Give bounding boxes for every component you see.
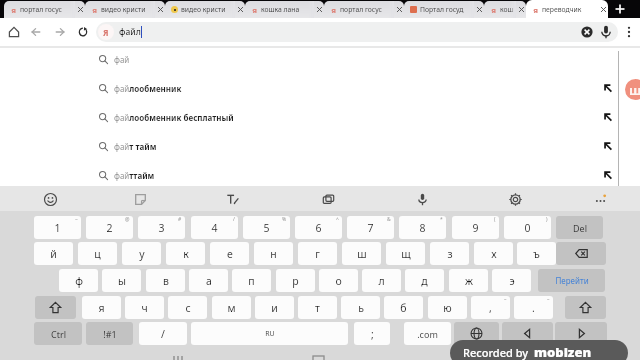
button[interactable]: Я: [324, 1, 404, 18]
button[interactable]: з: [430, 242, 469, 265]
button[interactable]: Voice search: [596, 19, 616, 45]
button[interactable]: л: [362, 269, 401, 292]
button[interactable]: Profile: [625, 79, 640, 100]
button[interactable]: Insert suggestion: [603, 83, 613, 93]
button[interactable]: /: [139, 322, 187, 345]
button[interactable]: Insert suggestion: [603, 141, 613, 151]
staticText: ы: [118, 274, 126, 288]
button[interactable]: ц: [78, 242, 117, 265]
button[interactable]: Я: [4, 1, 85, 18]
button[interactable]: Я: [526, 0, 608, 18]
button[interactable]: т: [298, 296, 337, 319]
button[interactable]: 4: [191, 216, 238, 239]
button[interactable]: фай: [0, 45, 640, 73]
button[interactable]: н: [254, 242, 293, 265]
button[interactable]: ю: [428, 296, 467, 319]
button[interactable]: р: [276, 269, 315, 292]
button[interactable]: Insert suggestion: [603, 170, 613, 180]
button[interactable]: New tab: [611, 0, 629, 18]
button[interactable]: Я: [85, 1, 165, 18]
button[interactable]: .com: [404, 322, 451, 345]
button[interactable]: я: [82, 296, 121, 319]
staticText: щ: [401, 247, 411, 261]
staticText: кошка: [500, 5, 517, 14]
button[interactable]: ,: [471, 296, 510, 319]
button[interactable]: More: [589, 188, 611, 210]
button[interactable]: д: [405, 269, 444, 292]
button[interactable]: ч: [125, 296, 164, 319]
button[interactable]: 7: [347, 216, 394, 239]
staticText: р: [292, 274, 299, 288]
button[interactable]: [556, 242, 606, 265]
button[interactable]: э: [492, 269, 531, 292]
button[interactable]: Я: [245, 1, 324, 18]
staticText: к: [183, 247, 189, 261]
button[interactable]: ф: [59, 269, 98, 292]
staticText: /: [161, 327, 165, 341]
button[interactable]: 5: [243, 216, 290, 239]
button[interactable]: Clear: [577, 19, 597, 45]
button[interactable]: х: [474, 242, 513, 265]
button[interactable]: а: [189, 269, 228, 292]
button[interactable]: в: [146, 269, 185, 292]
button[interactable]: Voice input: [411, 188, 433, 210]
button[interactable]: п: [232, 269, 271, 292]
button[interactable]: у: [122, 242, 161, 265]
button[interactable]: Home: [4, 19, 24, 45]
button[interactable]: ъ: [517, 242, 556, 265]
button[interactable]: Back: [26, 19, 46, 45]
button[interactable]: ь: [341, 296, 380, 319]
button[interactable]: б: [384, 296, 423, 319]
button[interactable]: Del: [556, 216, 603, 239]
button[interactable]: и: [255, 296, 294, 319]
button[interactable]: файлообменник: [0, 74, 640, 102]
button[interactable]: ж: [449, 269, 488, 292]
button[interactable]: Reload: [73, 19, 93, 45]
button[interactable]: Insert suggestion: [603, 112, 613, 122]
button[interactable]: 6: [295, 216, 342, 239]
button[interactable]: 1: [34, 216, 81, 239]
button[interactable]: .: [514, 296, 553, 319]
button[interactable]: Stickers: [129, 188, 151, 210]
staticText: 8: [419, 221, 426, 235]
button[interactable]: ;: [354, 322, 390, 345]
button[interactable]: файттайм: [0, 161, 640, 189]
button[interactable]: More options: [620, 19, 638, 45]
button[interactable]: Портал госуд: [404, 1, 484, 18]
staticText: и: [271, 301, 278, 315]
button[interactable]: Ctrl: [34, 322, 82, 345]
button[interactable]: м: [212, 296, 251, 319]
button[interactable]: 8: [399, 216, 446, 239]
button[interactable]: 9: [452, 216, 499, 239]
button[interactable]: [454, 322, 499, 345]
button[interactable]: файлообменник бесплатный: [0, 103, 640, 131]
button[interactable]: й: [34, 242, 73, 265]
button[interactable]: 2: [86, 216, 133, 239]
button[interactable]: 0: [504, 216, 551, 239]
button[interactable]: Handwriting: [221, 188, 243, 210]
button[interactable]: файт тайм: [0, 132, 640, 160]
button[interactable]: [555, 322, 607, 345]
button[interactable]: щ: [386, 242, 425, 265]
button[interactable]: Forward: [50, 19, 70, 45]
button[interactable]: Перейти: [538, 269, 605, 292]
button[interactable]: 3: [138, 216, 185, 239]
button[interactable]: г: [298, 242, 337, 265]
button[interactable]: ш: [342, 242, 381, 265]
button[interactable]: с: [168, 296, 207, 319]
button[interactable]: о: [319, 269, 358, 292]
button[interactable]: к: [166, 242, 205, 265]
button[interactable]: видео кристи: [165, 1, 245, 18]
button[interactable]: е: [210, 242, 249, 265]
button[interactable]: Я: [484, 1, 526, 18]
button[interactable]: ы: [102, 269, 141, 292]
button[interactable]: Emoji: [39, 188, 61, 210]
button[interactable]: [565, 296, 606, 319]
button[interactable]: Я: [96, 22, 618, 42]
button[interactable]: RU: [191, 322, 348, 345]
button[interactable]: Clipboard: [317, 188, 339, 210]
button[interactable]: [502, 322, 553, 345]
button[interactable]: !#1: [86, 322, 133, 345]
button[interactable]: Settings: [504, 188, 526, 210]
button[interactable]: [35, 296, 76, 319]
